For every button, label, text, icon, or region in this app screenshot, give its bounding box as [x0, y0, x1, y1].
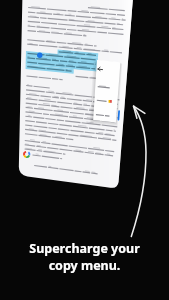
staticText: Supercharge your copy menu. — [0, 240, 169, 274]
